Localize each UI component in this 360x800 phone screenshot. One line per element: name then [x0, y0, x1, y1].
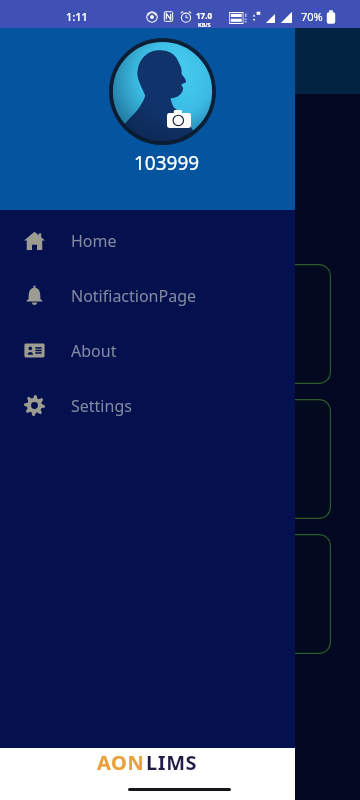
button[interactable]: Settings: [0, 378, 295, 433]
staticText: Settings: [71, 395, 132, 417]
staticText: 17.0: [196, 10, 212, 21]
button[interactable]: SAMPLE 3: [29, 399, 331, 519]
button[interactable]: Change profile photo: [167, 110, 191, 128]
staticText: About: [71, 340, 117, 362]
staticText: KB/S: [198, 21, 211, 28]
staticText: 103999: [134, 150, 200, 176]
staticText: Home: [71, 230, 117, 252]
staticText: LIMS: [146, 749, 198, 776]
staticText: NotifiactionPage: [71, 285, 197, 307]
button[interactable]: RESULT 6: [29, 534, 331, 654]
button[interactable]: About: [0, 323, 295, 378]
staticText: 70%: [301, 9, 323, 24]
button[interactable]: NotifiactionPage: [0, 268, 295, 323]
staticText: AON: [97, 749, 145, 776]
staticText: 1:11: [66, 9, 88, 24]
button[interactable]: Home: [0, 213, 295, 268]
button[interactable]: [29, 264, 331, 384]
